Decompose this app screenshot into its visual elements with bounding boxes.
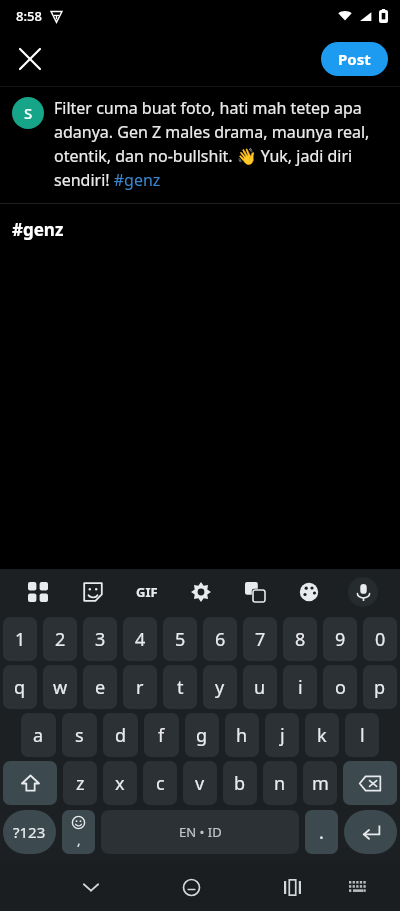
staticText: 8 (295, 627, 306, 652)
button[interactable]: 4 (123, 617, 157, 661)
button[interactable]: Shift (3, 761, 57, 805)
button[interactable]: r (123, 665, 157, 709)
button[interactable]: d (103, 713, 138, 757)
button[interactable]: 8 (283, 617, 317, 661)
button[interactable]: Enter (344, 810, 397, 854)
button[interactable]: Close (8, 37, 52, 81)
button[interactable]: Translate (228, 569, 282, 615)
button[interactable]: e (83, 665, 117, 709)
button[interactable]: EN • ID (101, 810, 299, 854)
staticText: h (236, 723, 248, 748)
button[interactable]: Voice input (336, 569, 390, 615)
button[interactable]: Hide keyboard (58, 863, 123, 911)
staticText: d (115, 723, 127, 748)
button[interactable]: h (225, 713, 259, 757)
staticText: 6 (215, 627, 226, 652)
button[interactable]: Settings (174, 569, 228, 615)
button[interactable]: n (263, 761, 297, 805)
button[interactable]: Backspace (343, 761, 397, 805)
button[interactable]: a (21, 713, 56, 757)
button[interactable]: b (223, 761, 257, 805)
button[interactable]: . (305, 810, 338, 854)
button[interactable]: Themes (282, 569, 336, 615)
button[interactable]: i (283, 665, 317, 709)
staticText: y (215, 675, 225, 700)
button[interactable]: Stickers (65, 569, 120, 615)
staticText: t (177, 675, 184, 700)
staticText: c (156, 771, 165, 796)
button[interactable]: y (203, 665, 237, 709)
button[interactable]: l (345, 713, 379, 757)
button[interactable]: g (185, 713, 219, 757)
button[interactable]: 3 (83, 617, 117, 661)
button[interactable]: Recent apps (260, 863, 325, 911)
button[interactable]: 1 (3, 617, 37, 661)
staticText: o (335, 675, 346, 700)
staticText: v (195, 771, 205, 796)
staticText: u (254, 675, 266, 700)
button[interactable]: 5 (163, 617, 197, 661)
button[interactable]: x (103, 761, 137, 805)
staticText: z (76, 771, 85, 796)
button[interactable]: Switch keyboard (325, 863, 390, 911)
button[interactable]: w (43, 665, 77, 709)
button[interactable]: v (183, 761, 217, 805)
staticText: f (158, 723, 165, 748)
button[interactable]: p (363, 665, 397, 709)
button[interactable]: t (163, 665, 197, 709)
staticText: q (14, 675, 26, 700)
staticText: k (317, 723, 327, 748)
staticText: Post (338, 49, 371, 69)
staticText: r (136, 675, 144, 700)
button[interactable]: j (265, 713, 299, 757)
button[interactable]: 0 (363, 617, 397, 661)
button[interactable]: 7 (243, 617, 277, 661)
staticText: p (374, 675, 386, 700)
staticText: GIF (136, 583, 158, 601)
staticText: j (280, 723, 285, 748)
staticText: 8:58 (16, 7, 42, 25)
staticText: i (298, 675, 303, 700)
button[interactable]: z (63, 761, 97, 805)
button[interactable]: s (62, 713, 97, 757)
staticText: EN • ID (179, 823, 222, 841)
staticText: n (274, 771, 286, 796)
button[interactable]: Emoji and comma (62, 810, 95, 854)
staticText: m (312, 771, 329, 796)
staticText: 0 (375, 627, 386, 652)
button[interactable]: Post (321, 42, 388, 76)
button[interactable]: k (305, 713, 339, 757)
button[interactable]: Home (159, 863, 224, 911)
staticText: , (77, 831, 81, 849)
staticText: w (53, 675, 68, 700)
button[interactable]: ?123 (3, 810, 56, 854)
button[interactable]: m (303, 761, 337, 805)
staticText: #genz (12, 218, 64, 241)
staticText: x (115, 771, 125, 796)
staticText: a (33, 723, 44, 748)
button[interactable]: f (144, 713, 179, 757)
staticText: b (234, 771, 246, 796)
button[interactable]: o (323, 665, 357, 709)
staticText: 9 (335, 627, 346, 652)
staticText: s (75, 723, 84, 748)
button[interactable]: GIF (120, 569, 174, 615)
staticText: Filter cuma buat foto, hati mah tetep ap… (54, 97, 386, 191)
staticText: 4 (135, 627, 146, 652)
button[interactable]: S (12, 97, 44, 129)
staticText: S (24, 103, 33, 123)
staticText: g (196, 723, 208, 748)
button[interactable]: 6 (203, 617, 237, 661)
button[interactable]: c (143, 761, 177, 805)
staticText: . (319, 820, 324, 845)
staticText: 1 (15, 627, 26, 652)
button[interactable]: Apps (10, 569, 65, 615)
button[interactable]: 9 (323, 617, 357, 661)
staticText: l (360, 723, 365, 748)
staticText: 2 (55, 627, 66, 652)
staticText: 5 (175, 627, 186, 652)
button[interactable]: u (243, 665, 277, 709)
button[interactable]: 2 (43, 617, 77, 661)
staticText: 3 (95, 627, 106, 652)
button[interactable]: q (3, 665, 37, 709)
